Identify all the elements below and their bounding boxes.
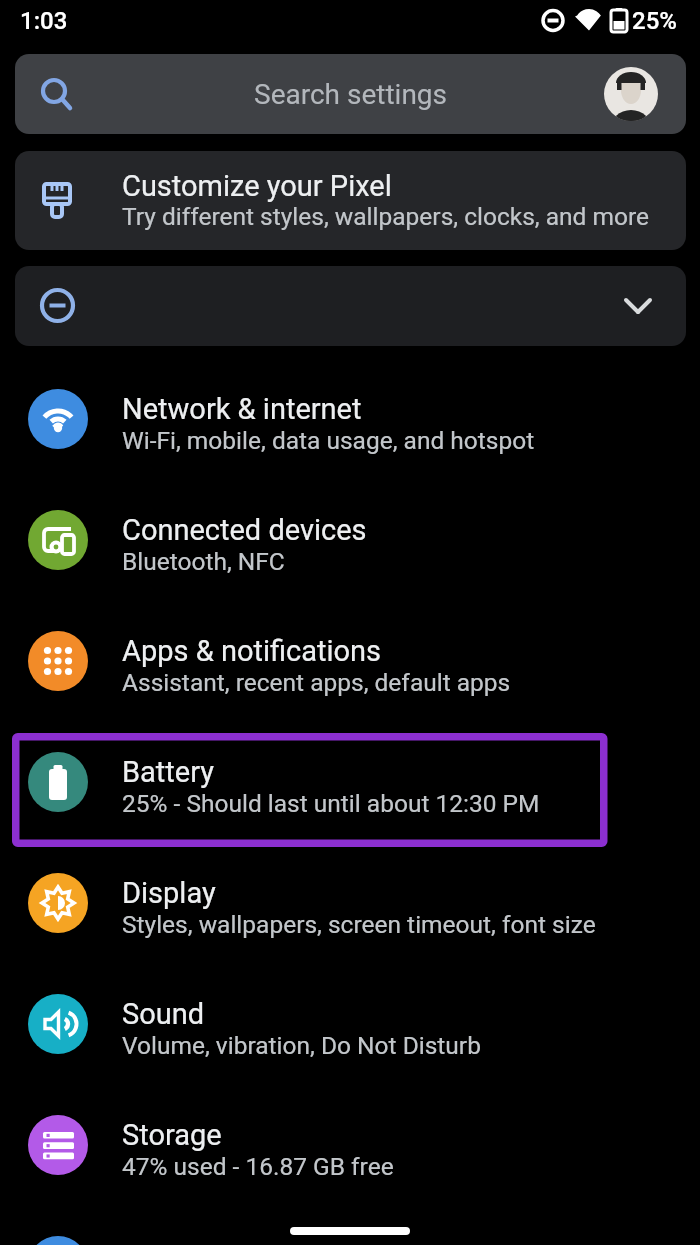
staticText: Sound — [122, 997, 205, 1031]
staticText: Volume, vibration, Do Not Disturb — [122, 1031, 481, 1060]
staticText: Styles, wallpapers, screen timeout, font… — [122, 910, 596, 939]
button[interactable]: Storage — [0, 1090, 700, 1211]
staticText: 1:03 — [20, 7, 68, 35]
button[interactable]: Search settings — [15, 54, 686, 134]
staticText: Storage — [122, 1118, 222, 1152]
staticText: 25% — [632, 7, 677, 35]
button[interactable]: Sound — [0, 969, 700, 1090]
staticText: 47% used - 16.87 GB free — [122, 1152, 394, 1181]
staticText: Customize your Pixel — [122, 169, 392, 203]
staticText: Try different styles, wallpapers, clocks… — [122, 202, 650, 231]
staticText: 25% - Should last until about 12:30 PM — [122, 789, 540, 818]
staticText: Bluetooth, NFC — [122, 547, 285, 576]
staticText: Display — [122, 876, 216, 910]
staticText: Battery — [122, 755, 214, 789]
button[interactable]: Battery — [0, 727, 700, 848]
button[interactable]: Customize your Pixel — [15, 151, 686, 250]
button[interactable] — [15, 266, 686, 346]
button[interactable]: Network & internet — [0, 364, 700, 485]
button[interactable]: Display — [0, 848, 700, 969]
button[interactable]: Apps & notifications — [0, 606, 700, 727]
staticText: Assistant, recent apps, default apps — [122, 668, 511, 697]
staticText: Wi-Fi, mobile, data usage, and hotspot — [122, 426, 535, 455]
button[interactable]: Connected devices — [0, 485, 700, 606]
staticText: Apps & notifications — [122, 634, 382, 668]
staticText: Search settings — [254, 78, 448, 111]
button[interactable]: Privacy — [0, 1211, 700, 1245]
staticText: Connected devices — [122, 513, 367, 547]
staticText: Network & internet — [122, 392, 362, 426]
